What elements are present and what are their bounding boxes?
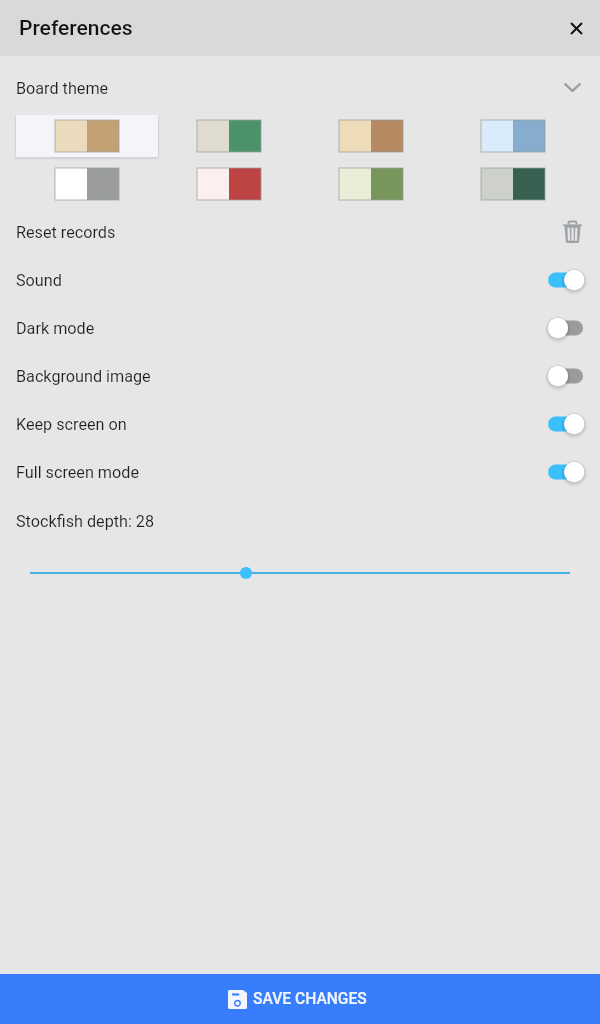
staticText: Full screen mode [16, 463, 140, 482]
button[interactable]: Board theme option 5 [55, 168, 119, 200]
staticText: Stockfish depth: 28 [16, 512, 155, 531]
button[interactable]: Board theme option 7 [339, 168, 403, 200]
button[interactable]: Board theme option 3 [339, 120, 403, 152]
button[interactable]: Reset records [552, 213, 592, 253]
button[interactable]: Board theme option 2 [197, 120, 261, 152]
button[interactable]: Sound [0, 257, 600, 305]
staticText: Board theme [16, 79, 109, 98]
staticText: Reset records [16, 223, 116, 242]
staticText: Preferences [19, 16, 133, 41]
staticText: Background image [16, 367, 151, 386]
button[interactable]: Dark mode [0, 305, 600, 353]
button[interactable]: Board theme option 8 [481, 168, 545, 200]
button[interactable]: Dark mode [542, 311, 592, 347]
button[interactable]: Stockfish depth slider [0, 549, 600, 597]
button[interactable]: Board theme option 1 [55, 120, 119, 152]
staticText: Dark mode [16, 319, 95, 338]
button[interactable]: Reset records [0, 209, 600, 257]
button[interactable]: Full screen mode [542, 455, 592, 491]
button[interactable]: SAVE CHANGES [0, 974, 600, 1024]
button[interactable]: Close [556, 8, 596, 48]
button[interactable]: Full screen mode [0, 449, 600, 497]
button[interactable]: Board theme option 6 [197, 168, 261, 200]
staticText: SAVE CHANGES [253, 990, 367, 1008]
button[interactable]: Keep screen on [542, 407, 592, 443]
staticText: Keep screen on [16, 415, 127, 434]
staticText: Sound [16, 271, 62, 290]
button[interactable]: Keep screen on [0, 401, 600, 449]
button[interactable]: Board theme option 4 [481, 120, 545, 152]
button[interactable]: Background image [542, 359, 592, 395]
button[interactable]: Background image [0, 353, 600, 401]
button[interactable]: Sound [542, 263, 592, 299]
button[interactable]: Board theme [0, 64, 600, 110]
other: Collapse board theme [552, 67, 592, 107]
